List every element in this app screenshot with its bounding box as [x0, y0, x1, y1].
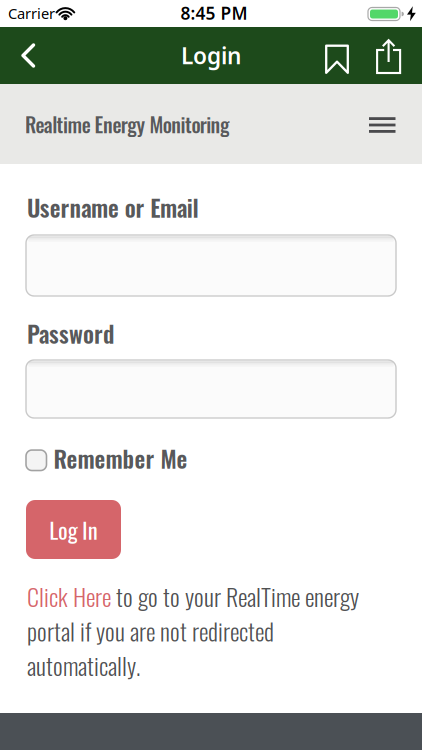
staticText: Password	[27, 316, 114, 351]
button[interactable]: Bookmark	[325, 27, 349, 83]
button[interactable]: Menu	[359, 106, 405, 142]
staticText: Login	[181, 40, 241, 70]
staticText: Remember Me	[53, 441, 187, 476]
button[interactable]: Back	[0, 27, 36, 83]
staticText: portal if you are not redirected	[27, 613, 274, 649]
staticText: Realtime Energy Monitoring	[25, 109, 230, 139]
button[interactable]: Share	[349, 27, 422, 84]
button[interactable]: Password	[26, 360, 396, 418]
staticText: Carrier	[8, 3, 55, 23]
button[interactable]: Username or Email	[26, 235, 396, 296]
button[interactable]: Remember Me	[26, 441, 187, 476]
staticText: Click Here	[27, 578, 111, 614]
button[interactable]: Log In	[26, 500, 121, 559]
button[interactable]: Click Here	[27, 578, 111, 614]
staticText: 8:45 PM	[180, 1, 247, 24]
staticText: automatically.	[27, 647, 140, 683]
staticText: to go to your RealTime energy	[111, 578, 359, 614]
staticText: Log In	[49, 513, 98, 546]
staticText: Username or Email	[27, 190, 199, 225]
